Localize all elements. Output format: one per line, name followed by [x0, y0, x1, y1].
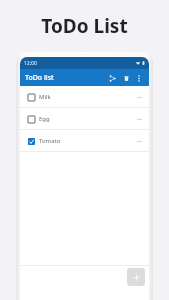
- button[interactable]: Milk: [20, 86, 149, 107]
- button[interactable]: Share: [105, 71, 119, 85]
- button[interactable]: Item options: [134, 136, 144, 146]
- staticText: ToDo List: [41, 13, 128, 39]
- staticText: Egg: [39, 115, 50, 123]
- staticText: 12:00: [24, 60, 37, 67]
- button[interactable]: More options: [133, 72, 145, 84]
- button[interactable]: Delete: [119, 71, 133, 85]
- button[interactable]: Tomato: [20, 130, 149, 151]
- staticText: Tomato: [39, 137, 61, 145]
- button[interactable]: Item options: [134, 114, 144, 124]
- button[interactable]: Egg: [20, 108, 149, 129]
- button[interactable]: Add task: [127, 268, 145, 286]
- button[interactable]: Item options: [134, 92, 144, 102]
- staticText: Milk: [39, 93, 51, 101]
- staticText: ToDo list: [25, 73, 54, 83]
